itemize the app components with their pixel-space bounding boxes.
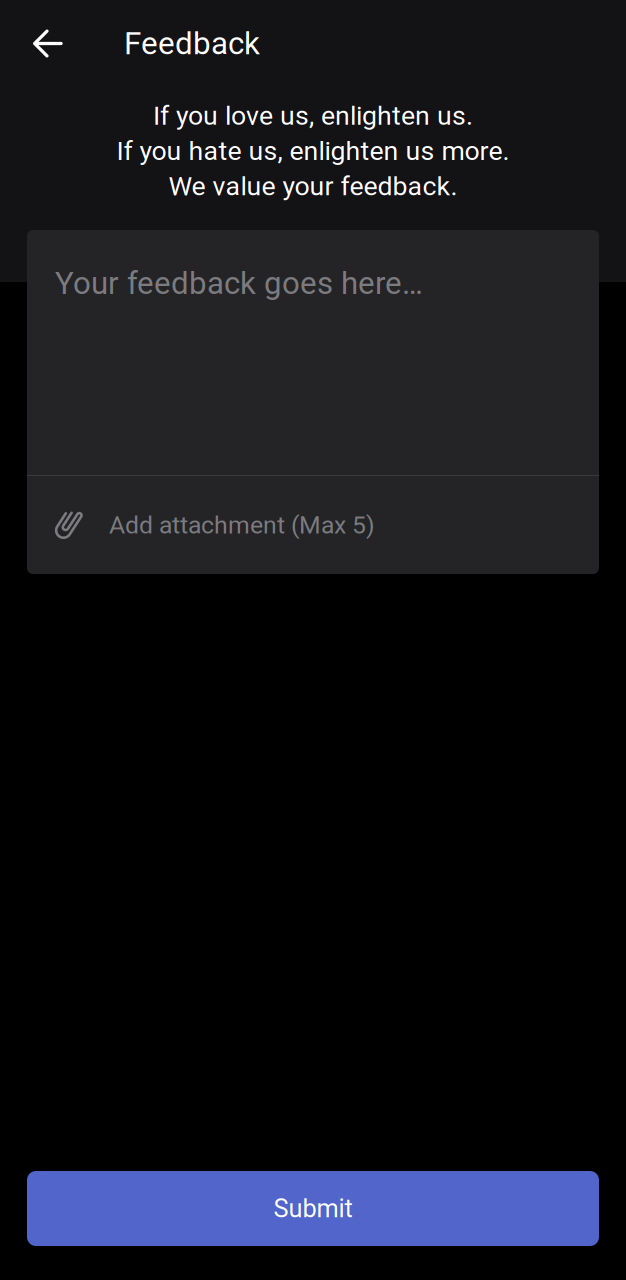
button[interactable]: Submit bbox=[27, 1171, 599, 1246]
staticText: If you love us, enlighten us. bbox=[153, 100, 473, 131]
button[interactable]: Your feedback goes here… bbox=[27, 230, 599, 475]
staticText: Feedback bbox=[124, 25, 260, 62]
staticText: We value your feedback. bbox=[168, 170, 457, 202]
staticText: If you hate us, enlighten us more. bbox=[116, 135, 509, 167]
button[interactable]: Add attachment (Max 5) bbox=[27, 476, 599, 574]
staticText: Submit bbox=[273, 1194, 352, 1223]
staticText: Your feedback goes here… bbox=[55, 265, 423, 302]
staticText: Add attachment (Max 5) bbox=[109, 510, 375, 540]
button[interactable]: Back bbox=[19, 14, 77, 72]
